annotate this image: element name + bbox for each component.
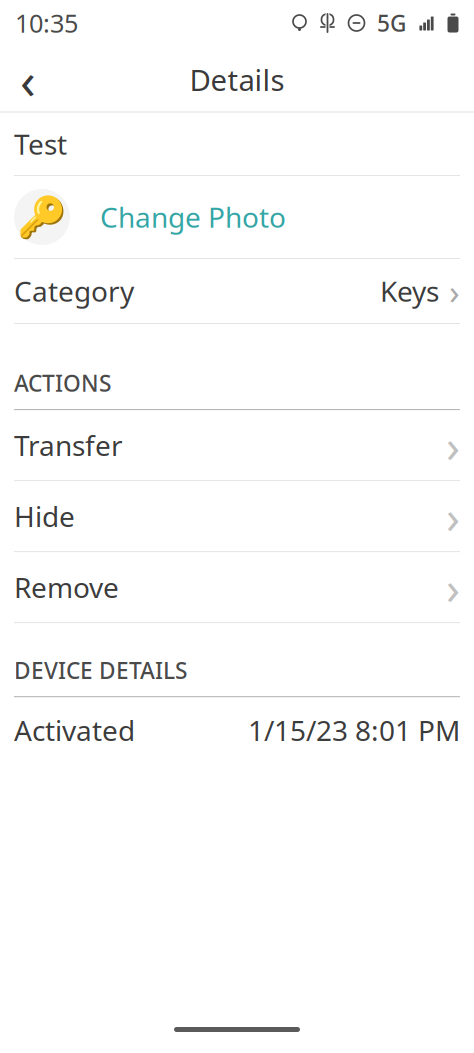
button[interactable]: Back [0, 50, 56, 108]
staticText: Activated [14, 712, 135, 749]
staticText: Test [14, 125, 67, 163]
staticText: Change Photo [100, 198, 286, 236]
staticText: Hide [14, 497, 75, 535]
staticText: ‹ [20, 46, 36, 113]
button[interactable]: Category [14, 259, 460, 323]
staticText: › [446, 415, 460, 475]
staticText: Category [14, 272, 134, 310]
staticText: 5G [377, 8, 406, 38]
staticText: 10:35 [15, 6, 78, 40]
staticText: Transfer [14, 426, 123, 464]
staticText: ACTIONS [14, 368, 111, 398]
button[interactable]: Remove [14, 552, 460, 622]
staticText: Details [189, 60, 284, 99]
button[interactable]: 🔑 [14, 176, 460, 258]
button[interactable]: Hide [14, 481, 460, 551]
staticText: › [449, 268, 460, 314]
staticText: › [446, 486, 460, 546]
staticText: DEVICE DETAILS [14, 655, 187, 685]
staticText: 🔑 [17, 194, 67, 240]
staticText: Remove [14, 568, 119, 606]
staticText: 1/15/23 8:01 PM [248, 712, 460, 749]
staticText: Keys [380, 272, 439, 310]
staticText: › [446, 557, 460, 617]
button[interactable]: Transfer [14, 410, 460, 480]
